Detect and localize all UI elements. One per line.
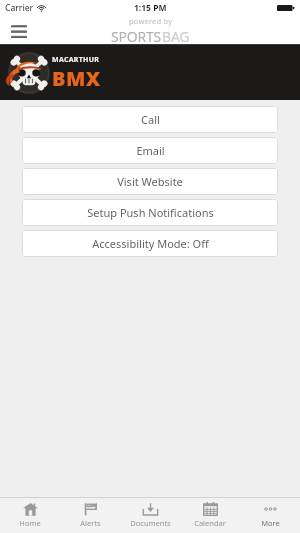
staticText: Email	[136, 143, 165, 158]
button[interactable]: Calendar	[180, 498, 240, 533]
staticText: MACARTHUR	[52, 55, 100, 65]
staticText: Visit Website	[117, 174, 183, 189]
button[interactable]: Open menu	[6, 18, 32, 44]
button[interactable]: Alerts	[60, 498, 120, 533]
staticText: Alerts	[80, 518, 101, 528]
staticText: 1:15 PM	[134, 2, 167, 14]
staticText: Accessibility Mode: Off	[92, 236, 209, 251]
button[interactable]: Email	[22, 137, 278, 164]
button[interactable]: Home	[0, 498, 60, 533]
button[interactable]: Accessibility Mode: Off	[22, 230, 278, 257]
staticText: Documents	[130, 518, 171, 528]
button[interactable]: Documents	[120, 498, 180, 533]
button[interactable]: Visit Website	[22, 168, 278, 195]
staticText: Call	[141, 112, 160, 127]
staticText: More	[261, 518, 280, 528]
staticText: SPORTS	[111, 27, 162, 45]
button[interactable]: Setup Push Notifications	[22, 199, 278, 226]
staticText: BAG	[162, 27, 190, 45]
button[interactable]: More	[240, 498, 300, 533]
staticText: powered by	[129, 16, 173, 26]
staticText: BMX	[52, 65, 101, 92]
staticText: Carrier	[5, 2, 34, 14]
staticText: Setup Push Notifications	[87, 205, 214, 220]
button[interactable]: Call	[22, 106, 278, 133]
staticText: Calendar	[194, 518, 226, 528]
staticText: Home	[19, 518, 41, 528]
